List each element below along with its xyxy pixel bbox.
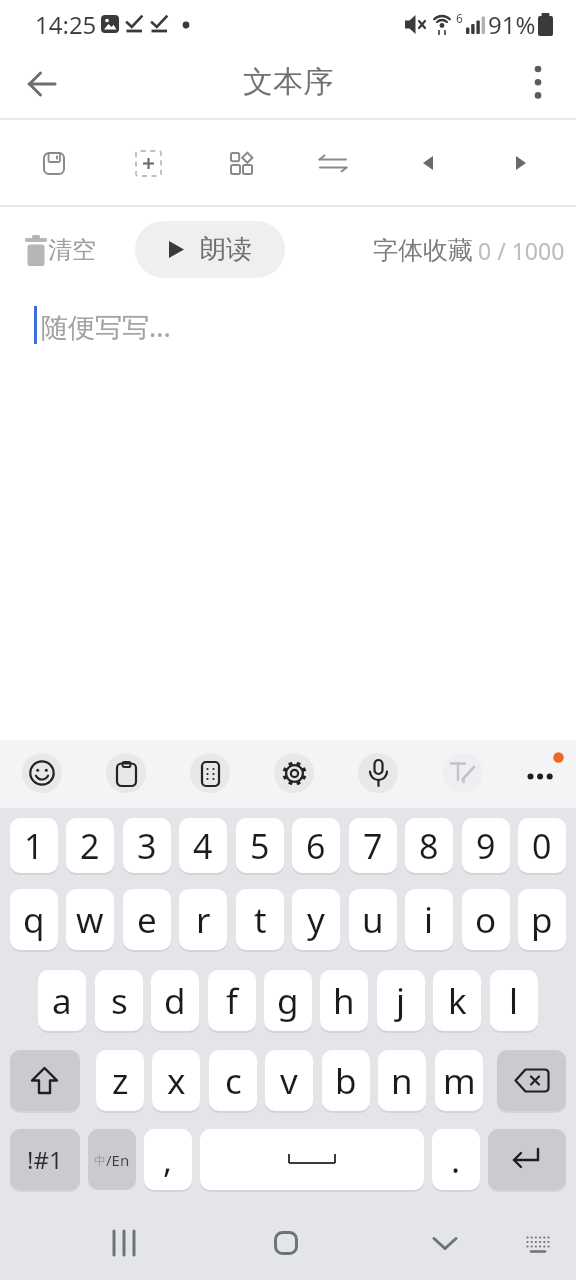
staticText: /En <box>106 1150 130 1170</box>
button[interactable] <box>200 1129 424 1190</box>
button[interactable]: 8 <box>405 818 453 873</box>
staticText: x <box>167 1057 186 1105</box>
staticText: 4 <box>193 823 213 869</box>
staticText: 0 / 1000 <box>478 235 565 266</box>
button[interactable] <box>14 56 70 112</box>
button[interactable] <box>92 1215 156 1271</box>
button[interactable] <box>106 753 146 793</box>
button[interactable]: 4 <box>179 818 227 873</box>
button[interactable]: g <box>264 970 312 1031</box>
button[interactable]: o <box>462 889 510 950</box>
button[interactable] <box>10 1050 80 1111</box>
button[interactable]: d <box>151 970 199 1031</box>
staticText: m <box>443 1057 476 1105</box>
button[interactable] <box>26 135 82 191</box>
button[interactable] <box>400 135 456 191</box>
button[interactable] <box>512 56 564 112</box>
button[interactable]: y <box>292 889 340 950</box>
button[interactable]: . <box>432 1129 480 1190</box>
button[interactable] <box>213 135 269 191</box>
button[interactable]: u <box>349 889 397 950</box>
button[interactable]: 2 <box>66 818 114 873</box>
button[interactable]: 3 <box>123 818 171 873</box>
button[interactable] <box>355 222 473 278</box>
staticText: i <box>424 896 434 944</box>
button[interactable]: s <box>95 970 143 1031</box>
button[interactable] <box>120 135 176 191</box>
button[interactable]: r <box>179 889 227 950</box>
button[interactable]: 5 <box>236 818 284 873</box>
button[interactable] <box>14 218 124 282</box>
staticText: 6 <box>456 10 463 26</box>
staticText: 中 <box>94 1153 106 1168</box>
button[interactable]: 1 <box>10 818 58 873</box>
button[interactable] <box>305 135 361 191</box>
button[interactable]: b <box>322 1050 370 1111</box>
button[interactable]: 6 <box>292 818 340 873</box>
staticText: s <box>111 977 128 1025</box>
button[interactable] <box>512 1222 564 1266</box>
staticText: q <box>23 896 45 944</box>
button[interactable]: k <box>433 970 481 1031</box>
staticText: 字体收藏 <box>373 235 473 266</box>
button[interactable] <box>274 753 314 793</box>
button[interactable] <box>443 753 483 793</box>
button[interactable]: j <box>377 970 425 1031</box>
staticText: a <box>52 977 72 1025</box>
staticText: 91% <box>488 8 536 41</box>
staticText: g <box>277 977 299 1025</box>
staticText: n <box>391 1057 413 1105</box>
button[interactable]: 朗读 <box>135 221 285 278</box>
button[interactable]: , <box>144 1129 192 1190</box>
button[interactable]: 中 <box>88 1129 136 1190</box>
staticText: 3 <box>137 823 157 869</box>
staticText: w <box>76 896 104 944</box>
staticText: 随便写写... <box>41 308 171 345</box>
staticText: f <box>226 977 239 1025</box>
button[interactable]: 9 <box>462 818 510 873</box>
button[interactable]: h <box>320 970 368 1031</box>
button[interactable] <box>22 753 62 793</box>
staticText: l <box>509 977 519 1025</box>
button[interactable]: a <box>38 970 86 1031</box>
button[interactable]: l <box>490 970 538 1031</box>
button[interactable]: i <box>405 889 453 950</box>
button[interactable]: e <box>123 889 171 950</box>
staticText: 朗读 <box>200 233 252 266</box>
button[interactable]: f <box>208 970 256 1031</box>
button[interactable]: p <box>518 889 566 950</box>
button[interactable] <box>493 135 549 191</box>
button[interactable]: 7 <box>349 818 397 873</box>
staticText: o <box>475 896 497 944</box>
button[interactable]: t <box>236 889 284 950</box>
button[interactable]: 0 <box>518 818 566 873</box>
button[interactable] <box>190 753 230 793</box>
staticText: e <box>137 896 157 944</box>
button[interactable]: q <box>10 889 58 950</box>
staticText: h <box>333 977 355 1025</box>
button[interactable]: v <box>265 1050 313 1111</box>
staticText: , <box>163 1137 173 1183</box>
staticText: d <box>164 977 186 1025</box>
button[interactable] <box>358 753 398 793</box>
button[interactable]: x <box>152 1050 200 1111</box>
staticText: 文本序 <box>243 63 333 101</box>
button[interactable]: n <box>378 1050 426 1111</box>
staticText: 6 <box>306 823 326 869</box>
staticText: c <box>225 1057 242 1105</box>
button[interactable]: !#1 <box>10 1129 80 1190</box>
staticText: z <box>112 1057 129 1105</box>
button[interactable] <box>518 753 562 793</box>
button[interactable]: c <box>209 1050 257 1111</box>
button[interactable] <box>497 1050 566 1111</box>
button[interactable]: w <box>66 889 114 950</box>
button[interactable] <box>254 1215 318 1271</box>
staticText: 5 <box>250 823 270 869</box>
button[interactable] <box>413 1215 477 1271</box>
button[interactable] <box>488 1129 566 1190</box>
button[interactable]: z <box>96 1050 144 1111</box>
staticText: 2 <box>80 823 100 869</box>
button[interactable]: m <box>435 1050 483 1111</box>
staticText: !#1 <box>27 1143 63 1176</box>
staticText: p <box>531 896 553 944</box>
